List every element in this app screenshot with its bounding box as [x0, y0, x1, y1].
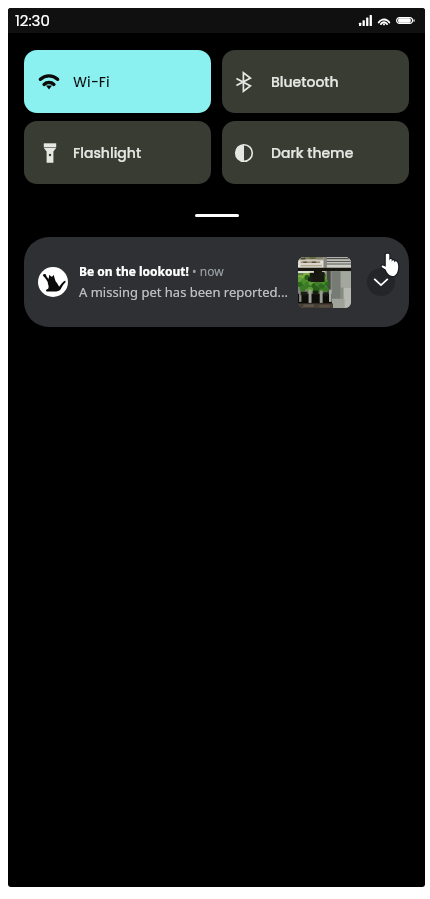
- staticText: Bluetooth: [271, 72, 339, 92]
- staticText: Flashlight: [73, 143, 142, 163]
- staticText: Be on the lookout!: [79, 263, 189, 279]
- button[interactable]: Drag handle: [195, 214, 239, 217]
- button[interactable]: Flashlight: [24, 121, 211, 184]
- button[interactable]: Expand notification: [367, 268, 395, 296]
- staticText: Dark theme: [271, 143, 354, 163]
- staticText: 12:30: [15, 10, 50, 31]
- staticText: • now: [189, 263, 224, 279]
- staticText: A missing pet has been reported...: [79, 283, 288, 301]
- staticText: Wi-Fi: [73, 72, 110, 92]
- button[interactable]: Wi-Fi: [24, 50, 211, 113]
- button[interactable]: Bluetooth: [222, 50, 409, 113]
- button[interactable]: Dark theme: [222, 121, 409, 184]
- button[interactable]: Be on the lookout!: [24, 237, 409, 327]
